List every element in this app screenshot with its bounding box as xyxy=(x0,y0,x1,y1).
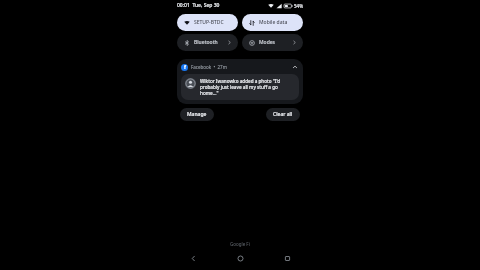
button[interactable]: f xyxy=(177,59,303,104)
button[interactable]: Clear all xyxy=(266,108,300,121)
staticText: Modes xyxy=(259,39,276,46)
staticText: Manage xyxy=(187,111,207,118)
button[interactable]: Home xyxy=(233,251,247,265)
staticText: Facebook • 27m xyxy=(191,64,227,70)
staticText: Wiktor Iwanowko added a photo "I'd proba… xyxy=(200,78,295,96)
staticText: 54% xyxy=(294,3,303,9)
button[interactable]: Wiktor Iwanowko added a photo "I'd proba… xyxy=(181,74,299,100)
button[interactable]: Modes xyxy=(242,34,303,51)
button[interactable]: Mobile data xyxy=(242,14,303,31)
button[interactable]: Bluetooth xyxy=(177,34,238,51)
button[interactable]: SETUP-BTDC xyxy=(177,14,238,31)
button[interactable]: Back xyxy=(186,251,200,265)
button[interactable]: Manage xyxy=(180,108,214,121)
staticText: Clear all xyxy=(273,111,293,118)
staticText: f xyxy=(184,64,186,71)
button[interactable]: Collapse notification xyxy=(291,63,299,71)
staticText: Mobile data xyxy=(259,19,288,26)
button[interactable]: Recent apps xyxy=(280,251,294,265)
staticText: Bluetooth xyxy=(194,39,218,46)
staticText: SETUP-BTDC xyxy=(194,19,224,26)
staticText: Google Fi xyxy=(230,241,250,247)
staticText: 00:01 Tue, Sep 30 xyxy=(177,2,220,9)
